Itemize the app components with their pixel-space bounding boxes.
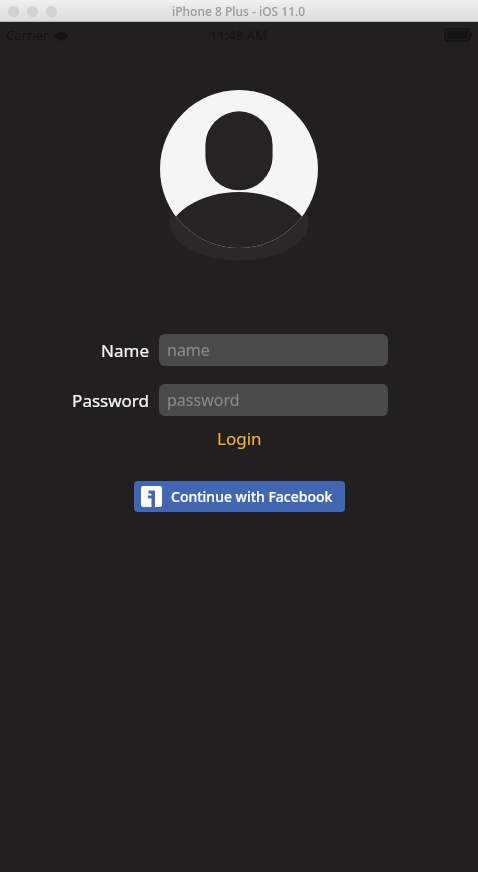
button[interactable]: password: [159, 384, 388, 416]
staticText: Login: [217, 427, 262, 450]
button[interactable]: Continue with Facebook: [134, 481, 345, 512]
button[interactable]: [8, 6, 19, 17]
button[interactable]: Login: [0, 423, 478, 454]
button[interactable]: name: [159, 334, 388, 366]
button[interactable]: [27, 6, 38, 17]
staticText: Continue with Facebook: [171, 487, 333, 506]
staticText: Name: [101, 339, 149, 362]
staticText: 11:48 AM: [210, 26, 268, 44]
staticText: iPhone 8 Plus - iOS 11.0: [172, 3, 306, 19]
staticText: Password: [72, 389, 149, 412]
other: Profile photo: [160, 90, 318, 248]
staticText: password: [167, 389, 240, 411]
staticText: Carrier: [6, 26, 49, 44]
button[interactable]: [46, 6, 57, 17]
staticText: name: [167, 339, 210, 361]
